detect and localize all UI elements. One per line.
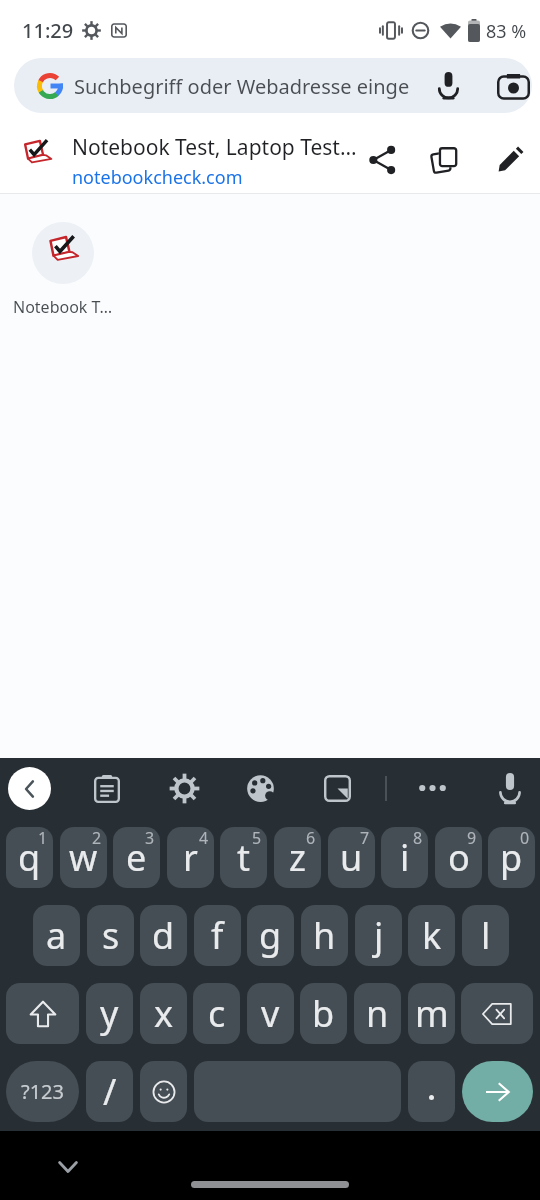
staticText: 1 [38, 827, 48, 849]
staticText: i [400, 833, 410, 882]
button[interactable] [140, 1061, 187, 1122]
button[interactable] [498, 773, 522, 804]
staticText: 3 [145, 827, 155, 849]
button[interactable] [431, 146, 459, 174]
button[interactable]: Notebook Test, Laptop Test… [0, 113, 540, 193]
staticText: o [448, 833, 470, 882]
button[interactable]: ?123 [6, 1061, 79, 1122]
button[interactable] [419, 784, 446, 792]
button[interactable]: Notebook T… [8, 222, 118, 318]
staticText: u [340, 833, 363, 882]
staticText: k [422, 911, 442, 960]
staticText: 2 [92, 827, 102, 849]
staticText: Notebook Test, Laptop Test… [72, 133, 357, 162]
staticText: g [259, 911, 282, 960]
staticText: d [152, 911, 175, 960]
button[interactable] [246, 774, 275, 802]
button[interactable]: m [408, 983, 455, 1044]
button[interactable] [437, 72, 460, 99]
button[interactable]: i [381, 827, 428, 888]
staticText: 0 [520, 827, 530, 849]
button[interactable]: u [328, 827, 375, 888]
button[interactable]: q [6, 827, 53, 888]
staticText: x [154, 989, 174, 1038]
staticText: 4 [199, 827, 209, 849]
button[interactable]: h [301, 905, 348, 966]
button[interactable] [369, 146, 396, 174]
button[interactable]: w [60, 827, 107, 888]
button[interactable] [497, 146, 524, 173]
button[interactable]: v [247, 983, 294, 1044]
button[interactable]: y [86, 983, 133, 1044]
button[interactable]: b [300, 983, 347, 1044]
button[interactable]: e [113, 827, 160, 888]
staticText: z [289, 833, 306, 882]
staticText: j [374, 911, 384, 960]
button[interactable] [6, 983, 79, 1044]
button[interactable] [94, 775, 120, 803]
staticText: Suchbegriff oder Webadresse einge [74, 73, 410, 100]
button[interactable]: g [247, 905, 294, 966]
staticText: a [46, 911, 67, 960]
button[interactable] [408, 1061, 455, 1122]
staticText: notebookcheck.com [72, 165, 243, 190]
staticText: n [366, 989, 389, 1038]
button[interactable] [8, 767, 51, 810]
button[interactable]: n [354, 983, 401, 1044]
button[interactable]: r [167, 827, 214, 888]
staticText: l [481, 911, 491, 960]
staticText: w [69, 833, 98, 882]
button[interactable] [58, 1161, 78, 1173]
staticText: ?123 [21, 1078, 64, 1105]
button[interactable] [324, 775, 351, 802]
staticText: s [102, 911, 120, 960]
staticText: m [415, 989, 449, 1038]
button[interactable]: p [488, 827, 535, 888]
button[interactable] [171, 775, 198, 802]
button[interactable]: a [33, 905, 80, 966]
staticText: e [126, 833, 147, 882]
button[interactable]: o [435, 827, 482, 888]
staticText: 83 % [486, 19, 527, 44]
staticText: 5 [252, 827, 262, 849]
staticText: f [211, 911, 224, 960]
button[interactable]: z [274, 827, 321, 888]
button[interactable]: l [462, 905, 509, 966]
button[interactable]: / [86, 1061, 133, 1122]
button[interactable] [194, 1061, 401, 1122]
staticText: 6 [306, 827, 316, 849]
staticText: 7 [360, 827, 370, 849]
button[interactable]: s [87, 905, 134, 966]
button[interactable]: f [194, 905, 241, 966]
button[interactable]: t [220, 827, 267, 888]
staticText: / [103, 1067, 117, 1116]
button[interactable]: Suchbegriff oder Webadresse einge [14, 58, 532, 113]
button[interactable] [462, 1061, 533, 1122]
button[interactable] [497, 74, 530, 99]
staticText: v [261, 989, 280, 1038]
staticText: 8 [413, 827, 423, 849]
staticText: q [18, 833, 41, 882]
button[interactable]: j [355, 905, 402, 966]
staticText: h [313, 911, 336, 960]
button[interactable] [461, 983, 533, 1044]
staticText: 9 [467, 827, 477, 849]
staticText: r [183, 833, 198, 882]
staticText: Notebook T… [13, 296, 113, 318]
staticText: p [500, 833, 523, 882]
button[interactable]: c [193, 983, 240, 1044]
staticText: b [312, 989, 335, 1038]
button[interactable]: d [140, 905, 187, 966]
staticText: y [100, 989, 119, 1038]
staticText: c [208, 989, 226, 1038]
staticText: t [237, 833, 250, 882]
button[interactable]: k [408, 905, 455, 966]
staticText: 11:29 [22, 17, 74, 44]
button[interactable]: x [140, 983, 187, 1044]
